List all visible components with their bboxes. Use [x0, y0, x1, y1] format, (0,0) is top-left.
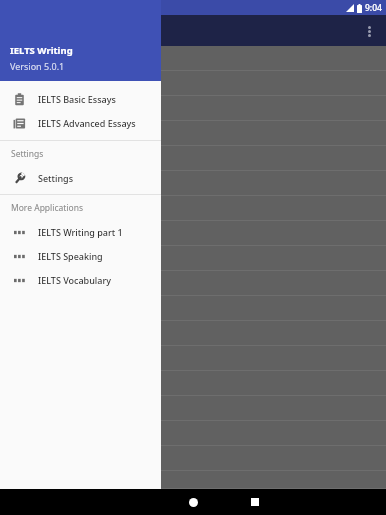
staticText: IELTS Basic Essays [38, 93, 116, 105]
button[interactable]: IELTS Writing part 1 [0, 220, 161, 244]
button[interactable] [0, 171, 386, 196]
staticText: IELTS Advanced Essays [38, 117, 136, 129]
button[interactable]: Home [171, 489, 215, 515]
button[interactable] [0, 321, 386, 346]
button[interactable]: IELTS Advanced Essays [0, 111, 161, 135]
staticText: IELTS Writing [10, 44, 73, 57]
button[interactable]: IELTS Basic Essays [0, 87, 161, 111]
button[interactable] [0, 146, 386, 171]
button[interactable] [0, 296, 386, 321]
button[interactable] [0, 446, 386, 471]
staticText: 9:04 [365, 2, 382, 14]
button[interactable]: Settings [0, 166, 161, 190]
button[interactable] [0, 246, 386, 271]
button[interactable] [0, 196, 386, 221]
staticText: Version 5.0.1 [10, 60, 65, 72]
button[interactable]: IELTS Vocabulary [0, 268, 161, 292]
button[interactable] [0, 221, 386, 246]
staticText: IELTS Writing part 1 [38, 226, 123, 238]
button[interactable] [0, 271, 386, 296]
button[interactable] [0, 421, 386, 446]
staticText: IELTS Speaking [38, 250, 103, 262]
staticText: IELTS Vocabulary [38, 274, 111, 286]
staticText: Settings [11, 148, 44, 160]
button[interactable] [0, 96, 386, 121]
button[interactable] [0, 371, 386, 396]
staticText: More Applications [11, 202, 84, 214]
button[interactable] [0, 46, 386, 71]
button[interactable] [0, 346, 386, 371]
button[interactable] [0, 71, 386, 96]
button[interactable]: Recent apps [233, 489, 277, 515]
button[interactable] [0, 471, 386, 489]
button[interactable]: More options [358, 20, 380, 42]
staticText: Settings [38, 172, 74, 184]
button[interactable] [0, 121, 386, 146]
button[interactable] [0, 396, 386, 421]
button[interactable]: IELTS Speaking [0, 244, 161, 268]
